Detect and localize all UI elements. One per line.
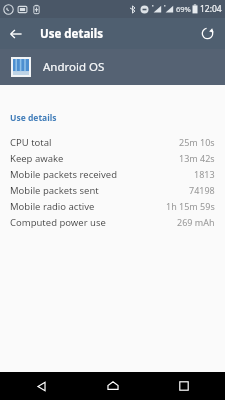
staticText: 1h 15m 59s — [166, 200, 215, 212]
staticText: Android OS — [43, 59, 105, 75]
staticText: Computed power use — [10, 216, 106, 229]
staticText: Keep awake — [10, 152, 64, 165]
staticText: Mobile packets sent — [10, 184, 99, 197]
staticText: 69% — [176, 4, 191, 14]
button[interactable]: Back — [0, 18, 31, 49]
button[interactable]: Mobile packets received — [0, 166, 225, 182]
staticText: Use details — [10, 112, 57, 124]
button[interactable]: Home — [83, 372, 143, 400]
button[interactable]: Refresh — [192, 18, 223, 49]
staticText: CPU total — [10, 136, 52, 149]
staticText: Mobile radio active — [10, 200, 95, 213]
button[interactable]: Computed power use — [0, 214, 225, 230]
button[interactable]: Mobile radio active — [0, 198, 225, 214]
staticText: 12:04 — [200, 3, 222, 15]
button[interactable]: Mobile packets sent — [0, 182, 225, 198]
button[interactable]: Keep awake — [0, 150, 225, 166]
staticText: 25m 10s — [179, 136, 215, 148]
button[interactable]: CPU total — [0, 134, 225, 150]
staticText: 1813 — [194, 168, 215, 180]
staticText: 269 mAh — [177, 216, 215, 228]
staticText: 74198 — [189, 184, 215, 196]
button[interactable]: Back — [11, 372, 71, 400]
staticText: 13m 42s — [179, 152, 215, 164]
staticText: Use details — [40, 26, 103, 42]
button[interactable]: Recent apps — [154, 372, 214, 400]
button[interactable]: Android OS — [0, 49, 225, 85]
staticText: Mobile packets received — [10, 168, 118, 181]
